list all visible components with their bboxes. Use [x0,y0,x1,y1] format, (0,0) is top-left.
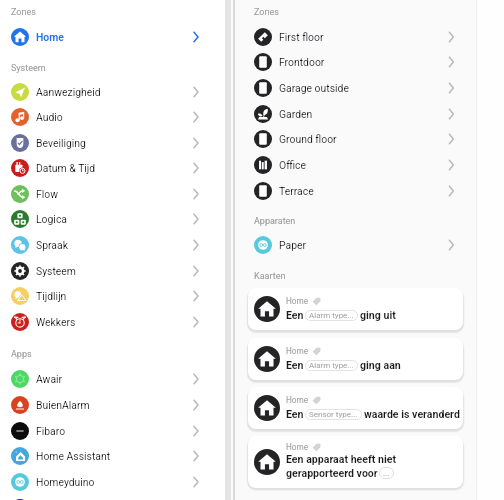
staticText: Fibaro [36,425,66,437]
button[interactable]: Office [235,152,476,178]
button[interactable]: Fibaro [0,418,225,444]
staticText: Aanwezigheid [36,86,101,98]
button[interactable]: Datum & Tijd [0,155,225,181]
staticText: Kaarten [254,271,286,282]
staticText: ging uit [360,309,396,321]
staticText: ... [383,469,390,478]
button[interactable]: Home [248,288,463,330]
staticText: Home [286,296,309,306]
staticText: Tijdlijn [36,290,67,302]
button[interactable]: Home [0,24,225,50]
button[interactable]: Home [248,338,463,380]
button[interactable]: Garage outside [235,75,476,101]
button[interactable]: Home [248,436,463,488]
button[interactable]: First floor [235,24,476,50]
staticText: Paper [279,239,307,251]
staticText: Awair [36,373,63,385]
staticText: Homeyduino [36,476,95,488]
staticText: BuienAlarm [36,399,90,411]
staticText: Wekkers [36,316,76,328]
button[interactable]: Wekkers [0,309,225,335]
staticText: Garden [279,108,313,120]
button[interactable]: Systeem [0,258,225,284]
staticText: Een [286,408,304,420]
staticText: gerapporteerd voor [286,467,378,479]
staticText: Apparaten [254,216,296,227]
button[interactable]: Logica [0,206,225,232]
staticText: Een [286,359,304,371]
staticText: ging aan [360,359,401,371]
button[interactable]: Spraak [0,232,225,258]
button[interactable]: Frontdoor [235,49,476,75]
staticText: Zones [11,7,36,18]
staticText: Frontdoor [279,56,325,68]
staticText: Office [279,159,306,171]
button[interactable]: Hue [0,495,225,500]
staticText: Home [286,346,309,356]
button[interactable]: Audio [0,104,225,130]
button[interactable]: Flow [0,181,225,207]
button[interactable]: Garden [235,101,476,127]
button[interactable]: BuienAlarm [0,392,225,418]
button[interactable]: Terrace [235,178,476,204]
staticText: Systeem [11,63,46,74]
button[interactable]: Paper [235,232,476,258]
staticText: Home [36,31,64,43]
staticText: Alarm type... [309,311,354,320]
staticText: Flow [36,188,59,200]
button[interactable]: Home Assistant [0,443,225,469]
staticText: Zones [254,7,279,18]
button[interactable]: Ground floor [235,126,476,152]
staticText: Datum & Tijd [36,162,96,174]
staticText: Een apparaat heeft niet [286,453,397,465]
staticText: First floor [279,31,324,43]
staticText: Ground floor [279,133,337,145]
button[interactable]: Tijdlijn [0,283,225,309]
staticText: Apps [11,349,32,360]
staticText: Terrace [279,185,314,197]
staticText: Beveiliging [36,137,86,149]
button[interactable]: Homeyduino [0,469,225,495]
staticText: Systeem [36,265,76,277]
staticText: Spraak [36,239,68,251]
staticText: Logica [36,213,67,225]
button[interactable]: Beveiliging [0,130,225,156]
staticText: Home Assistant [36,450,111,462]
staticText: Een [286,309,304,321]
staticText: Home [286,395,309,405]
staticText: Audio [36,111,63,123]
button[interactable]: Aanwezigheid [0,79,225,105]
staticText: Home [286,442,309,452]
button[interactable]: Awair [0,366,225,392]
staticText: Garage outside [279,82,349,94]
staticText: waarde is veranderd [364,408,460,420]
button[interactable]: Home [248,387,463,429]
staticText: Alarm type... [309,361,354,370]
staticText: Sensor type... [309,410,358,419]
